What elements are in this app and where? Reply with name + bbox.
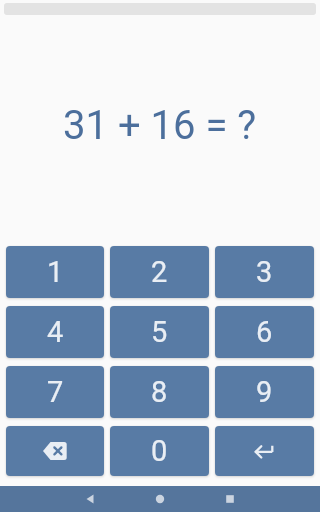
staticText: 6 <box>256 315 273 349</box>
staticText: 7 <box>47 375 64 409</box>
button[interactable]: 8 <box>110 366 209 418</box>
button[interactable]: 6 <box>215 306 314 358</box>
button[interactable] <box>125 486 195 512</box>
staticText: 9 <box>256 375 273 409</box>
button[interactable]: 7 <box>6 366 104 418</box>
staticText: 4 <box>47 315 64 349</box>
staticText: 31 + 16 = ? <box>63 102 257 149</box>
button[interactable] <box>6 426 104 476</box>
button[interactable]: 2 <box>110 246 209 298</box>
button[interactable]: 5 <box>110 306 209 358</box>
staticText: 2 <box>151 255 168 289</box>
button[interactable] <box>55 486 125 512</box>
button[interactable]: 3 <box>215 246 314 298</box>
button[interactable]: 1 <box>6 246 104 298</box>
staticText: 1 <box>47 255 64 289</box>
button[interactable]: 4 <box>6 306 104 358</box>
button[interactable]: 0 <box>110 426 209 476</box>
staticText: 0 <box>151 434 168 468</box>
button[interactable] <box>195 486 265 512</box>
button[interactable] <box>215 426 314 476</box>
staticText: 5 <box>151 315 168 349</box>
button[interactable]: 9 <box>215 366 314 418</box>
staticText: 3 <box>256 255 273 289</box>
staticText: 8 <box>151 375 168 409</box>
